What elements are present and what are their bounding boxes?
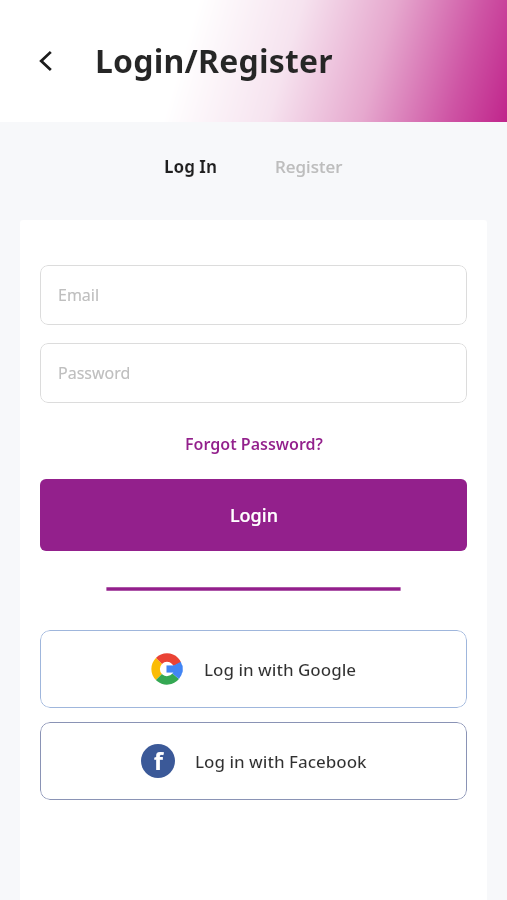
staticText: Email	[58, 284, 100, 306]
button[interactable]: f	[40, 722, 467, 800]
staticText: Log In	[164, 155, 217, 178]
button[interactable]: Back	[22, 37, 70, 85]
staticText: Forgot Password?	[185, 433, 323, 455]
staticText: Log in with Facebook	[195, 750, 367, 773]
button[interactable]: Password	[40, 343, 467, 403]
staticText: Login	[230, 503, 278, 528]
button[interactable]: Register	[267, 147, 351, 186]
button[interactable]: Forgot Password?	[175, 427, 333, 461]
staticText: Register	[275, 155, 343, 178]
staticText: Login/Register	[95, 39, 333, 83]
staticText: Log in with Google	[204, 658, 357, 681]
button[interactable]: Email	[40, 265, 467, 325]
button[interactable]: Log In	[156, 147, 225, 186]
button[interactable]: Log in with Google	[40, 630, 467, 708]
button[interactable]: Login	[40, 479, 467, 551]
staticText: Password	[58, 362, 131, 384]
staticText: f	[154, 745, 163, 776]
